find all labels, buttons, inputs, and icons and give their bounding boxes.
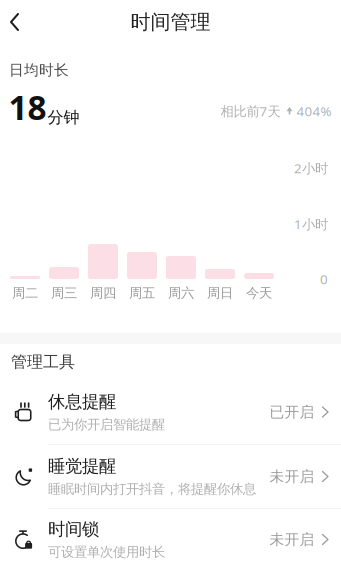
staticText: 日均时长 [9,61,69,79]
staticText: 管理工具 [11,352,75,372]
staticText: 分钟 [47,107,79,127]
staticText: 周四 [90,285,116,301]
staticText: 周二 [12,285,38,301]
staticText: 时间锁 [48,519,99,540]
staticText: 周三 [51,285,77,301]
staticText: 未开启 [269,467,314,485]
button[interactable]: 睡觉提醒 [0,445,341,508]
staticText: 相比前7天 [220,102,280,120]
staticText: 已为你开启智能提醒 [48,416,165,433]
staticText: 404% [296,102,331,120]
staticText: 周五 [129,285,155,301]
staticText: 周六 [168,285,194,301]
button[interactable]: 休息提醒 [0,380,341,444]
staticText: 18 [8,85,46,129]
staticText: 睡眠时间内打开抖音，将提醒你休息 [48,481,256,497]
staticText: 睡觉提醒 [48,456,116,477]
button[interactable]: Back [0,3,32,41]
staticText: 已开启 [269,403,314,421]
button[interactable]: 时间锁 [0,509,341,570]
staticText: 休息提醒 [48,391,116,412]
staticText: 1小时 [294,215,328,233]
staticText: 周日 [207,285,233,301]
staticText: 0 [320,270,328,288]
staticText: 今天 [246,285,272,301]
staticText: 未开启 [269,530,314,548]
staticText: 2小时 [294,159,328,177]
staticText: 时间管理 [130,10,210,34]
staticText: 可设置单次使用时长 [48,544,165,560]
